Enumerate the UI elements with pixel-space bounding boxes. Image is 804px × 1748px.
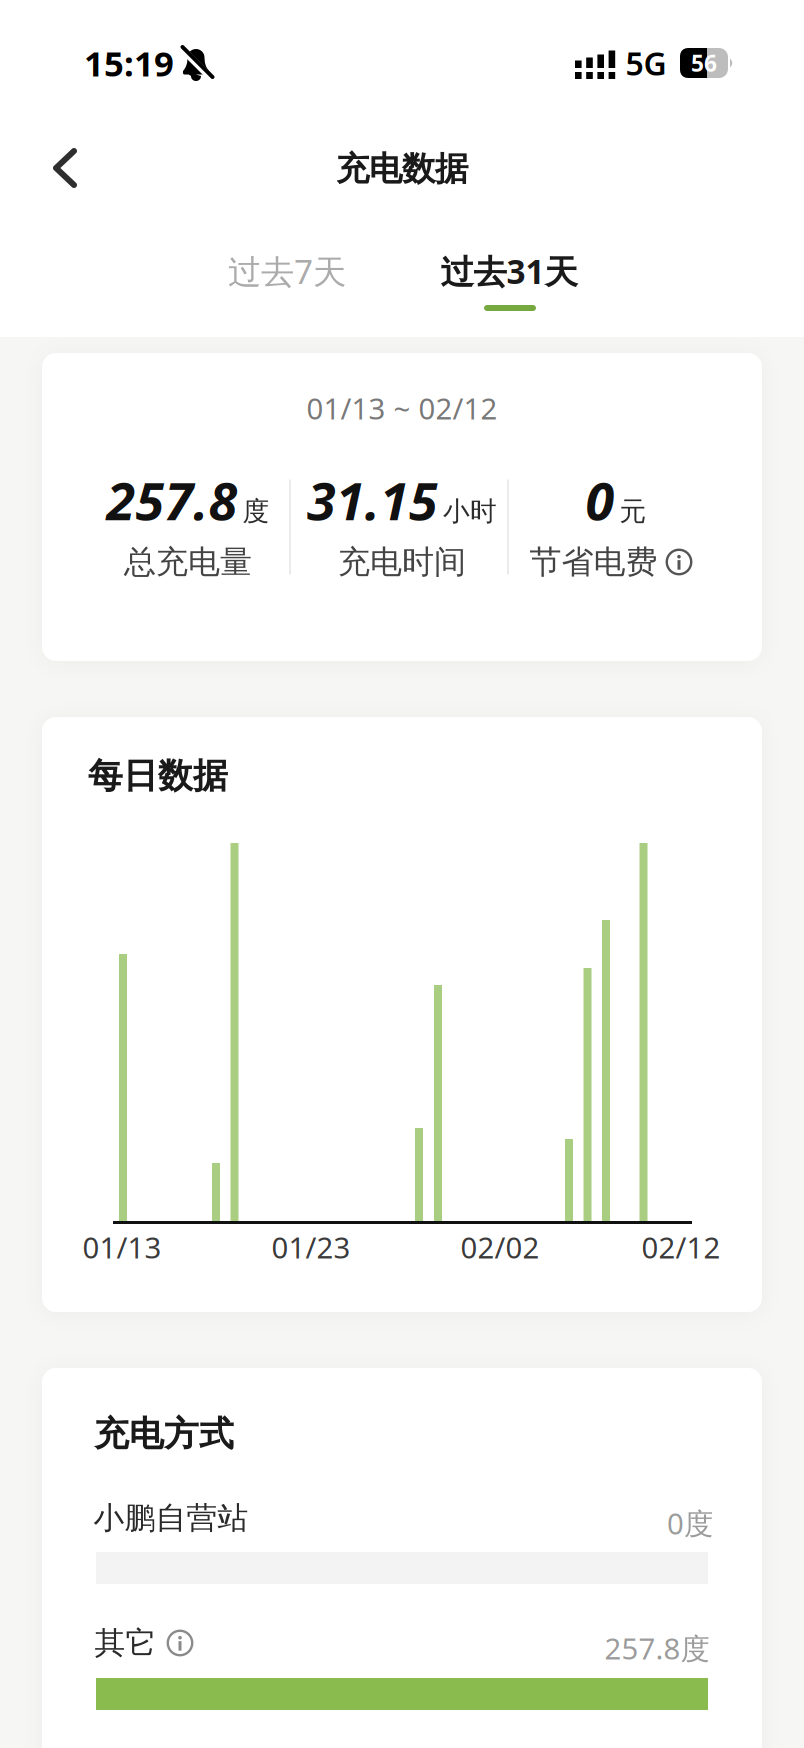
staticText: 257.8度 <box>604 1628 709 1667</box>
staticText: 257.8 <box>106 465 237 535</box>
staticText: 节省电费 <box>529 542 657 582</box>
staticText: 小鹏自营站 <box>93 1499 248 1537</box>
button[interactable]: 过去7天 <box>228 249 346 293</box>
button[interactable]: 节省电费说明 <box>529 542 692 582</box>
staticText: 过去31天 <box>440 249 577 293</box>
staticText: 01/13 ~ 02/12 <box>306 388 497 427</box>
staticText: 01/13 <box>82 1227 161 1266</box>
staticText: 其它 <box>94 1624 156 1662</box>
staticText: 5G <box>625 42 666 84</box>
staticText: 小时 <box>443 495 497 528</box>
staticText: 充电方式 <box>94 1413 234 1455</box>
staticText: 充电时间 <box>338 542 466 582</box>
button[interactable]: 过去31天 <box>440 249 577 293</box>
staticText: 15:19 <box>84 40 174 86</box>
staticText: 每日数据 <box>88 755 228 797</box>
staticText: 充电数据 <box>336 148 468 189</box>
staticText: 元 <box>619 495 646 528</box>
staticText: 02/02 <box>460 1227 539 1266</box>
staticText: 0 <box>585 465 614 535</box>
staticText: 总充电量 <box>124 542 252 582</box>
staticText: 0度 <box>667 1503 713 1542</box>
staticText: 过去7天 <box>228 249 346 293</box>
staticText: 度 <box>242 495 269 528</box>
staticText: 56 <box>691 48 717 78</box>
staticText: 02/12 <box>641 1227 720 1266</box>
button[interactable]: Back <box>44 146 88 190</box>
staticText: 31.15 <box>307 465 438 535</box>
button[interactable]: 其它说明 <box>166 1629 193 1656</box>
staticText: 01/23 <box>271 1227 350 1266</box>
